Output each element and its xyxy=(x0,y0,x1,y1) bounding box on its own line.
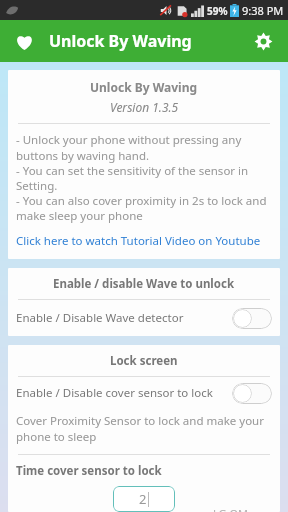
staticText: Unlock By Waving xyxy=(90,79,198,95)
staticText: Click here to watch Tutorial Video on Yo… xyxy=(16,233,261,249)
staticText: 2 xyxy=(139,490,147,508)
button[interactable]: Enable / Disable Wave detector xyxy=(8,300,280,336)
staticText: LG QMemo xyxy=(213,506,272,512)
button[interactable]: 2 xyxy=(113,486,175,512)
button[interactable]: Click here to watch Tutorial Video on Yo… xyxy=(8,233,280,249)
button[interactable]: Enable / Disable cover sensor to lock xyxy=(8,377,280,409)
staticText: Unlock By Waving xyxy=(49,30,192,52)
staticText: Enable / disable Wave to unlock xyxy=(53,276,235,292)
staticText: Version 1.3.5 xyxy=(110,99,179,115)
staticText: Cover Proximity Sensor to lock and make … xyxy=(16,413,264,444)
staticText: Time cover sensor to lock xyxy=(16,463,162,479)
staticText: Enable / Disable cover sensor to lock xyxy=(16,385,213,401)
button[interactable]: Toggle xyxy=(232,308,272,329)
button[interactable]: Settings xyxy=(248,26,278,56)
staticText: 9:38 PM xyxy=(242,3,284,18)
staticText: - Unlock your phone without pressing any… xyxy=(16,132,272,223)
staticText: 59% xyxy=(207,4,228,18)
staticText: Lock screen xyxy=(110,353,178,369)
staticText: Enable / Disable Wave detector xyxy=(16,310,184,326)
button[interactable]: Favorite xyxy=(10,27,38,55)
button[interactable]: Toggle xyxy=(232,383,272,404)
